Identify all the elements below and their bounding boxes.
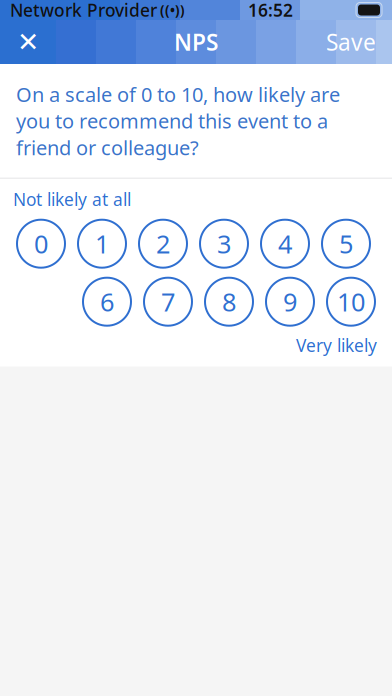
staticText: 2 [156, 227, 170, 260]
staticText: 8 [222, 285, 236, 318]
button[interactable]: 3 [200, 220, 248, 268]
staticText: Network Provider [10, 0, 157, 21]
staticText: Save [326, 27, 376, 57]
staticText: 4 [278, 227, 292, 260]
button[interactable]: 2 [139, 220, 187, 268]
button[interactable]: Close [6, 20, 50, 64]
staticText: 6 [100, 285, 114, 318]
button[interactable]: 4 [261, 220, 309, 268]
button[interactable]: 0 [17, 220, 65, 268]
button[interactable]: Save [316, 20, 386, 64]
staticText: ✕ [17, 27, 39, 57]
staticText: 5 [339, 227, 353, 260]
button[interactable]: 8 [205, 278, 253, 326]
button[interactable]: 9 [266, 278, 314, 326]
staticText: On a scale of 0 to 10, how likely are yo… [16, 81, 340, 161]
staticText: ((•)) [157, 1, 185, 19]
button[interactable]: 10 [327, 278, 375, 326]
staticText: NPS [174, 27, 218, 57]
staticText: 9 [283, 285, 297, 318]
staticText: Not likely at all [13, 188, 131, 211]
staticText: 7 [161, 285, 175, 318]
staticText: 0 [34, 227, 48, 260]
staticText: 16:52 [248, 0, 293, 21]
button[interactable]: 1 [78, 220, 126, 268]
staticText: 1 [95, 227, 109, 260]
staticText: 10 [337, 285, 365, 318]
button[interactable]: 7 [144, 278, 192, 326]
staticText: Very likely [296, 334, 377, 357]
button[interactable]: 5 [322, 220, 370, 268]
staticText: 3 [217, 227, 231, 260]
button[interactable]: 6 [83, 278, 131, 326]
